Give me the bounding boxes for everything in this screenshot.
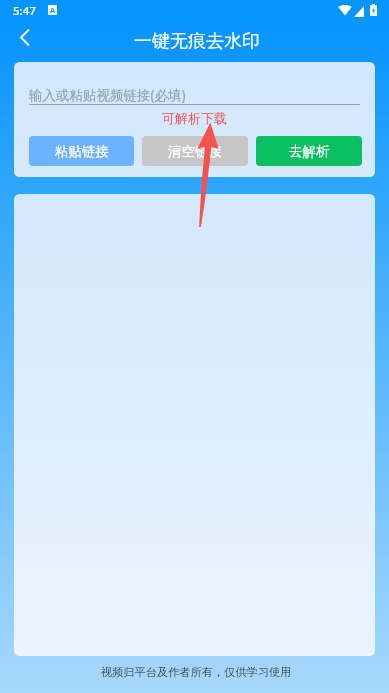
button[interactable]: 粘贴链接 (29, 136, 134, 166)
staticText: A (50, 5, 56, 15)
button[interactable]: 去解析 (256, 136, 362, 166)
staticText: 5:47 (13, 3, 36, 19)
button[interactable]: 输入或粘贴视频链接(必填) (29, 80, 360, 105)
button[interactable]: 清空链接 (142, 136, 248, 166)
staticText: 一键无痕去水印 (134, 30, 260, 53)
staticText: 可解析下载 (162, 110, 227, 126)
button[interactable]: Back (6, 20, 42, 56)
staticText: 去解析 (289, 143, 330, 160)
staticText: 清空链接 (168, 143, 222, 160)
staticText: 输入或粘贴视频链接(必填) (29, 86, 186, 104)
staticText: 视频归平台及作者所有，仅供学习使用 (101, 665, 292, 679)
staticText: 粘贴链接 (55, 143, 109, 160)
